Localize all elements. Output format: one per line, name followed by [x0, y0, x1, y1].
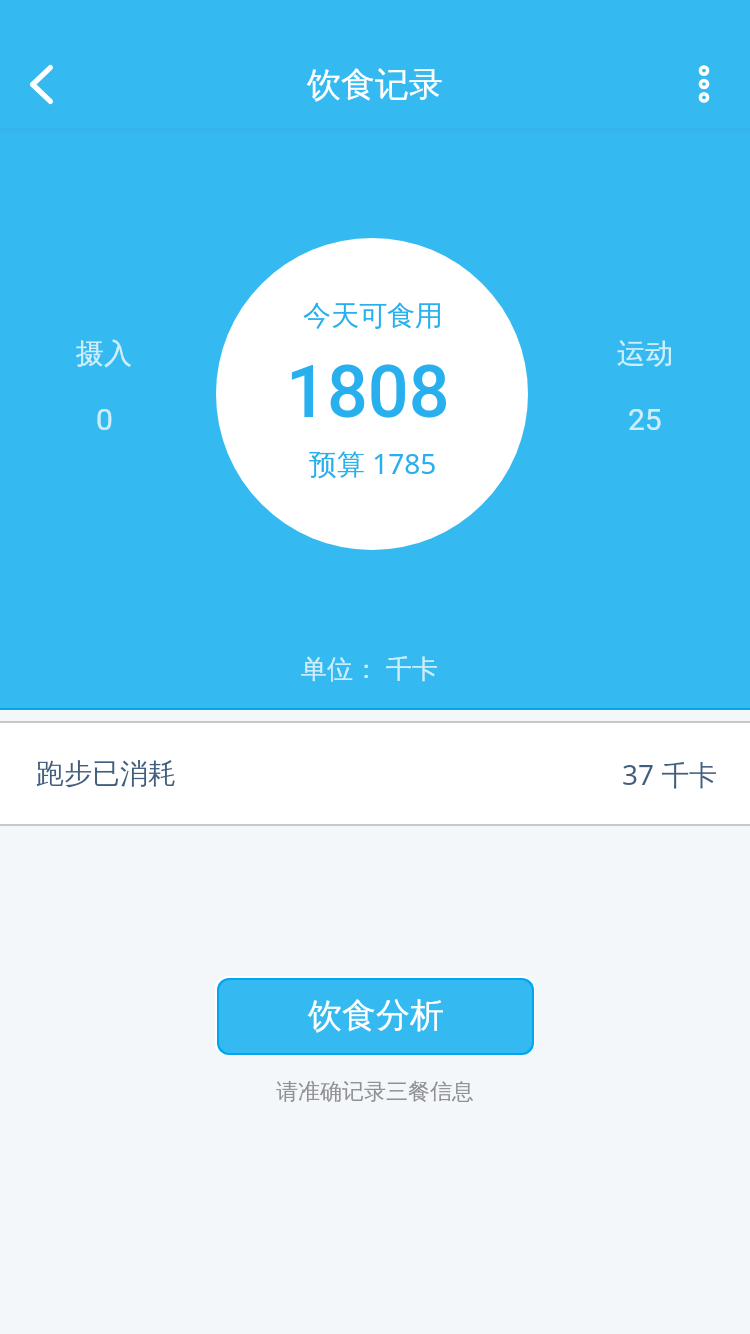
- staticText: 0: [96, 402, 113, 437]
- staticText: 37 千卡: [622, 755, 718, 793]
- button[interactable]: Back: [0, 40, 82, 128]
- button[interactable]: 摄入: [54, 336, 154, 437]
- staticText: 25: [628, 402, 662, 437]
- button[interactable]: 运动: [595, 336, 695, 437]
- staticText: 饮食记录: [307, 63, 443, 106]
- button[interactable]: 跑步已消耗: [0, 723, 750, 824]
- staticText: 摄入: [76, 336, 132, 371]
- button[interactable]: More options: [656, 40, 750, 128]
- staticText: 预算 1785: [309, 444, 437, 482]
- staticText: 1808: [286, 350, 450, 434]
- staticText: 单位： 千卡: [301, 650, 438, 686]
- staticText: 请准确记录三餐信息: [0, 1078, 750, 1106]
- staticText: 今天可食用: [303, 298, 443, 333]
- staticText: 跑步已消耗: [36, 756, 176, 791]
- staticText: 饮食分析: [308, 994, 444, 1037]
- staticText: 运动: [617, 336, 673, 371]
- button[interactable]: 今天可食用: [216, 238, 528, 550]
- button[interactable]: 饮食分析: [215, 976, 535, 1056]
